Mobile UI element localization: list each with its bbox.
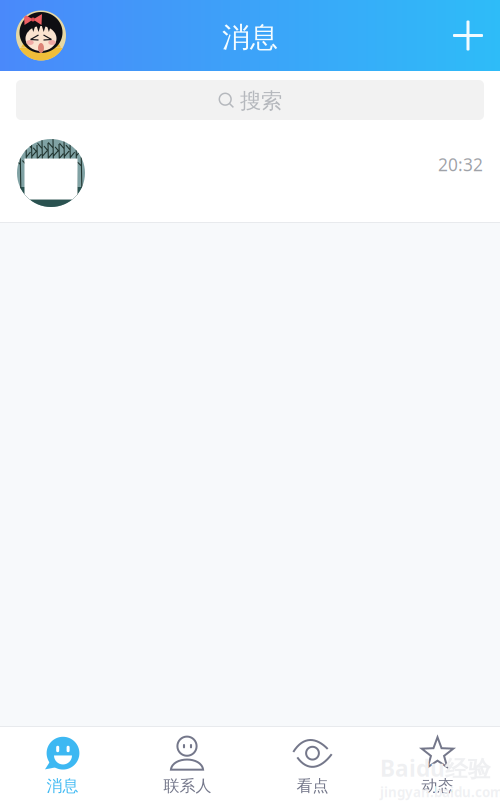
staticText: 联系人 <box>163 776 211 796</box>
staticText: 20:32 <box>438 153 483 176</box>
button[interactable]: Profile <box>0 10 66 60</box>
button[interactable]: 消息 <box>0 725 125 802</box>
button[interactable]: 20:32 <box>0 130 500 222</box>
button[interactable]: 搜索 <box>16 80 484 120</box>
button[interactable]: 看点 <box>250 725 375 802</box>
staticText: 消息 <box>46 776 78 796</box>
staticText: Baidu经验 <box>380 753 491 783</box>
staticText: 搜索 <box>240 88 282 114</box>
staticText: 看点 <box>296 776 328 796</box>
staticText: 动态 <box>421 776 453 796</box>
button[interactable]: 联系人 <box>125 725 250 802</box>
staticText: jingyan.baidu.com <box>380 783 500 801</box>
staticText: 消息 <box>222 20 278 55</box>
button[interactable]: 动态 <box>375 725 500 802</box>
button[interactable]: Add <box>448 15 500 55</box>
